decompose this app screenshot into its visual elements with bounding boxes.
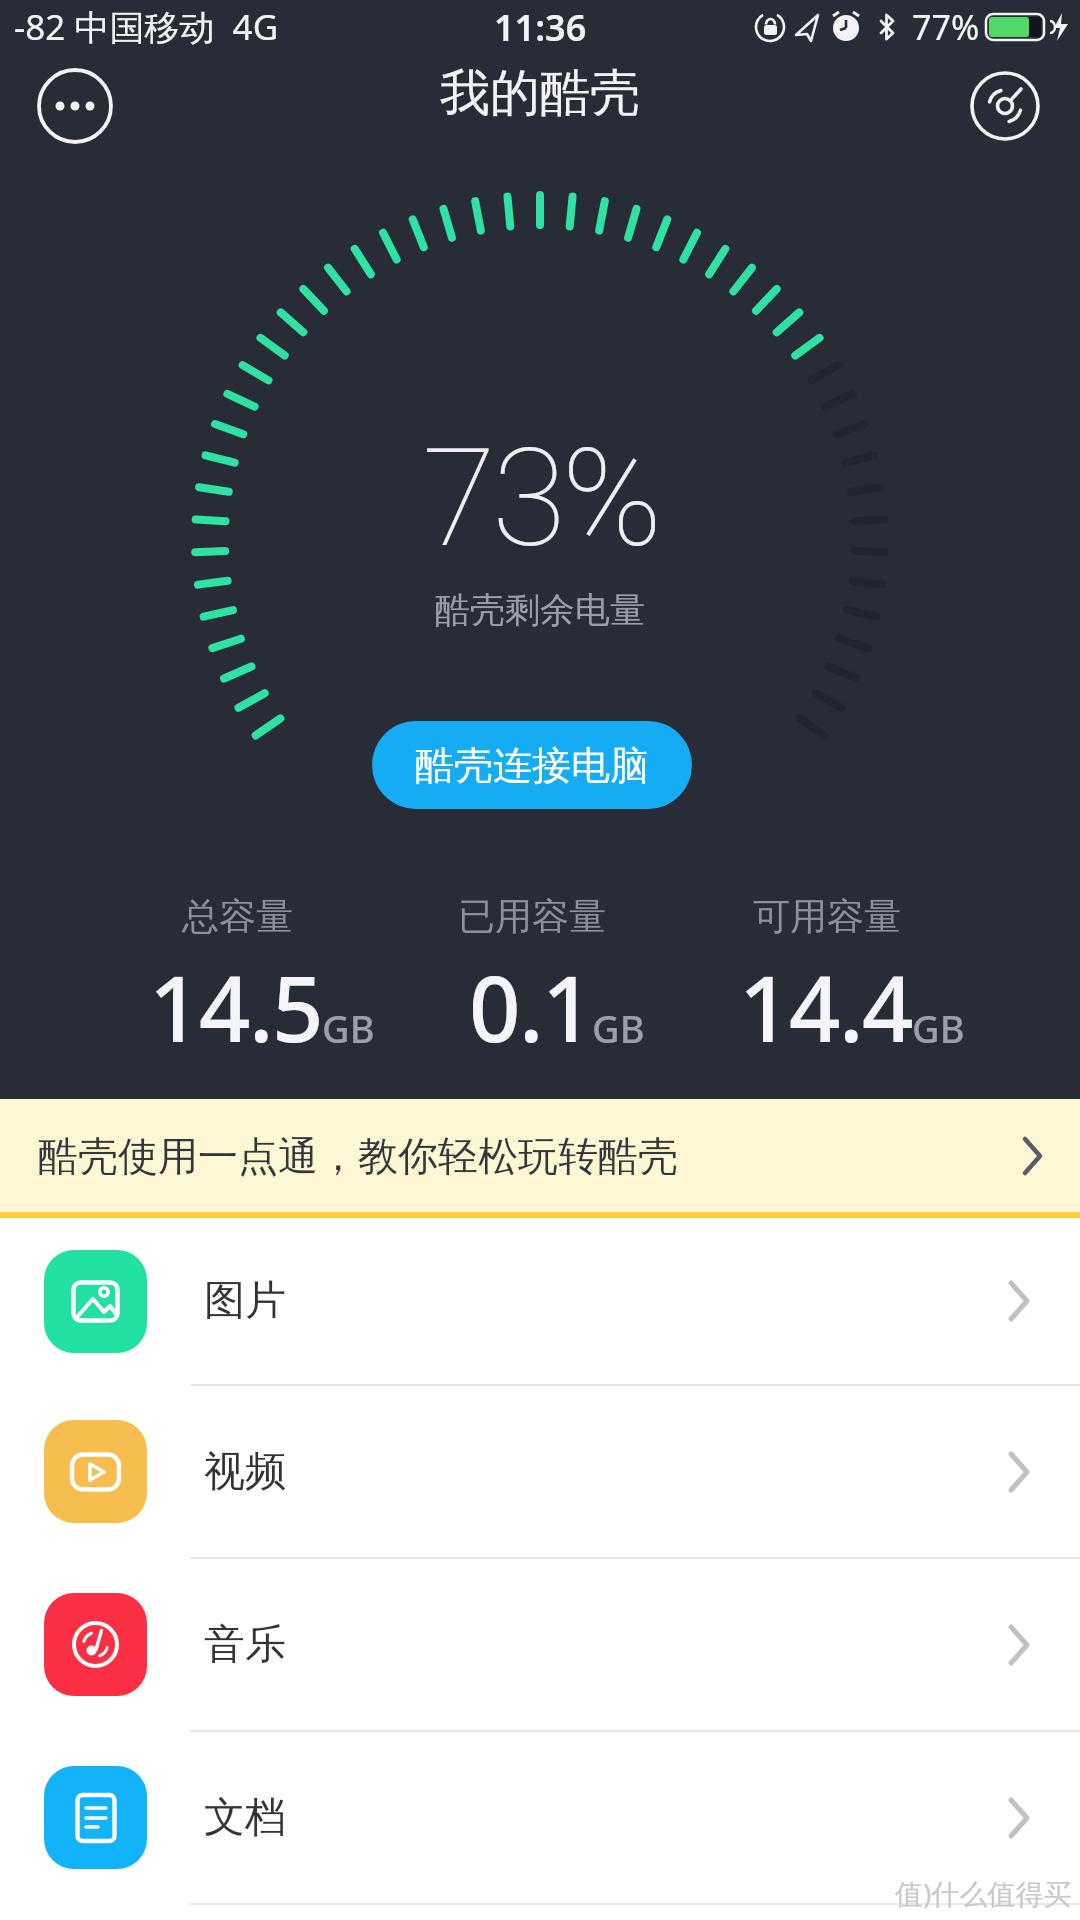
button[interactable]: 文档 (0, 1732, 1080, 1905)
button[interactable]: 图片 (0, 1218, 1080, 1386)
staticText: 我的酷壳 (440, 62, 640, 125)
staticText: 酷壳剩余电量 (435, 588, 645, 632)
staticText: 11:36 (494, 3, 587, 52)
staticText: GB (912, 1002, 965, 1054)
staticText: 值)什么值得买 (895, 1874, 1072, 1912)
staticText: 总容量 (182, 893, 293, 940)
staticText: 音乐 (204, 1619, 286, 1671)
staticText: 77% (912, 4, 980, 50)
staticText: 酷壳连接电脑 (415, 741, 649, 790)
staticText: 73% (422, 420, 659, 578)
staticText: 视频 (204, 1446, 286, 1498)
staticText: 14.4 (739, 946, 912, 1069)
staticText: 14.5 (149, 946, 322, 1069)
staticText: 文档 (204, 1792, 286, 1844)
button[interactable]: 酷壳使用一点通，教你轻松玩转酷壳 (0, 1099, 1080, 1218)
staticText: 图片 (204, 1275, 286, 1327)
staticText: -82 中国移动 4G (14, 3, 279, 51)
button[interactable]: 音乐 (0, 1559, 1080, 1732)
staticText: GB (592, 1002, 645, 1054)
staticText: GB (322, 1002, 375, 1054)
staticText: 已用容量 (458, 893, 606, 940)
staticText: 0.1 (469, 946, 592, 1069)
staticText: 可用容量 (753, 893, 901, 940)
button[interactable] (970, 71, 1040, 141)
button[interactable] (37, 68, 113, 144)
staticText: 酷壳使用一点通，教你轻松玩转酷壳 (38, 1131, 678, 1181)
button[interactable]: 酷壳连接电脑 (372, 721, 692, 809)
button[interactable]: 视频 (0, 1386, 1080, 1559)
